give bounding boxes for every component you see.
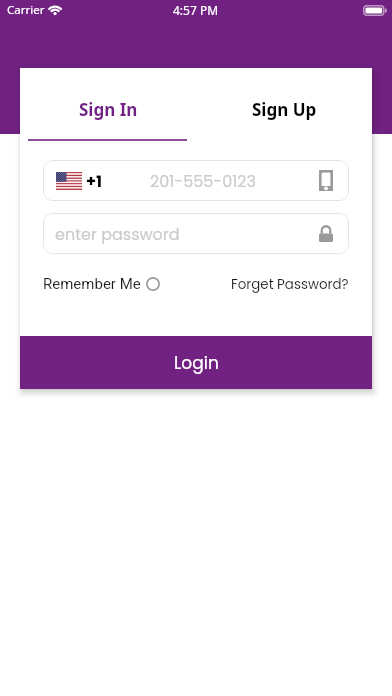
button[interactable]: enter password (43, 213, 349, 254)
other: Battery (363, 5, 387, 16)
staticText: +1 (86, 170, 103, 192)
staticText: Forget Password? (231, 275, 349, 294)
staticText: Login (174, 351, 219, 375)
staticText: Remember Me (43, 275, 141, 293)
staticText: enter password (55, 223, 180, 245)
button[interactable]: Sign In (20, 68, 196, 141)
staticText: Carrier (7, 2, 45, 18)
button[interactable]: Login (20, 336, 372, 389)
button[interactable]: +1 (43, 160, 349, 201)
button[interactable]: Forget Password? (231, 272, 349, 296)
staticText: 4:57 PM (173, 2, 219, 18)
button[interactable]: Sign Up (196, 68, 372, 141)
other: Password (319, 225, 333, 242)
button[interactable]: Remember Me (43, 272, 160, 296)
staticText: Sign Up (252, 98, 317, 121)
staticText: 201-555-0123 (150, 170, 256, 192)
other: Phone number (319, 170, 333, 191)
staticText: Sign In (79, 98, 138, 121)
